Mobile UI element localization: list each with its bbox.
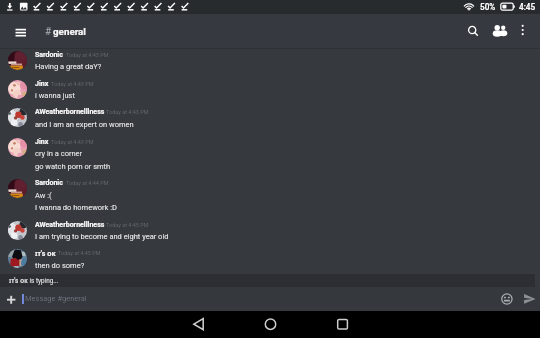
staticText: Today at 4:45 PM xyxy=(106,222,149,228)
staticText: Today at 4:45 PM xyxy=(58,250,101,256)
staticText: I wanna do homework :D xyxy=(35,203,118,212)
staticText: 4:45 xyxy=(519,2,536,12)
staticText: Aw :( xyxy=(35,191,52,200)
button[interactable] xyxy=(0,177,540,212)
button[interactable]: More options xyxy=(512,20,534,42)
staticText: Message #general xyxy=(25,294,87,303)
staticText: Jinx xyxy=(35,138,49,146)
staticText: ɪᴛ's ᴏᴋ is typing... xyxy=(9,276,59,285)
button[interactable] xyxy=(0,247,540,270)
staticText: Jinx xyxy=(35,80,49,88)
staticText: Sardonic xyxy=(35,179,63,187)
staticText: go watch porn or smth xyxy=(35,162,111,171)
staticText: Today at 4:43 PM xyxy=(51,81,94,87)
staticText: AWeatherbornelllness xyxy=(35,108,105,116)
staticText: Today at 4:43 PM xyxy=(106,109,149,115)
staticText: Today at 4:43 PM xyxy=(66,52,109,58)
button[interactable]: Members xyxy=(489,20,511,42)
button[interactable] xyxy=(0,49,540,71)
staticText: Today at 4:44 PM xyxy=(66,180,109,186)
button[interactable]: Send xyxy=(517,288,539,310)
button[interactable]: Search xyxy=(462,20,484,42)
button[interactable] xyxy=(0,219,540,241)
staticText: cry in a corner xyxy=(35,149,83,158)
button[interactable]: Home xyxy=(252,311,289,338)
staticText: Sardonic xyxy=(35,51,63,59)
staticText: 50% xyxy=(480,2,496,12)
button[interactable]: Add attachment xyxy=(1,288,23,310)
staticText: and I am an expert on women xyxy=(35,120,134,129)
staticText: i wanna just xyxy=(35,91,75,100)
staticText: general xyxy=(53,26,86,37)
button[interactable]: Back xyxy=(180,311,217,338)
button[interactable]: Recent apps xyxy=(324,311,361,338)
staticText: ɪᴛ's ᴏᴋ xyxy=(35,249,56,259)
button[interactable] xyxy=(0,106,540,129)
staticText: then do some? xyxy=(35,261,85,270)
staticText: AWeatherbornelllness xyxy=(35,221,105,229)
button[interactable]: Open navigation drawer xyxy=(9,21,32,44)
staticText: # xyxy=(45,26,52,38)
staticText: I am trying to become and eight year old xyxy=(35,232,169,241)
button[interactable] xyxy=(0,78,540,100)
button[interactable] xyxy=(0,136,540,171)
staticText: Having a great daY? xyxy=(35,62,102,71)
staticText: Today at 4:43 PM xyxy=(51,139,94,145)
button[interactable]: Emoji xyxy=(496,288,518,310)
